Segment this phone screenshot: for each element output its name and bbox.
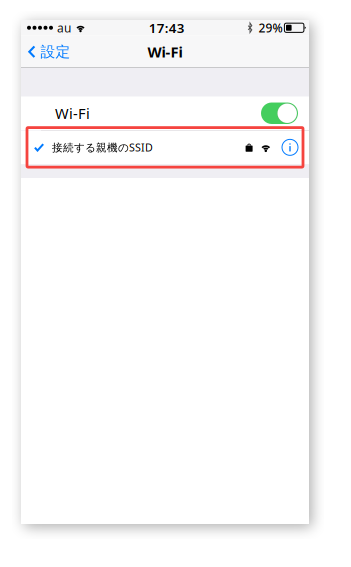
button[interactable]: Wi-Fi (21, 96, 309, 130)
button[interactable]: 設定 (21, 35, 79, 68)
staticText: 接続する親機のSSID (52, 140, 153, 154)
staticText: 29% (258, 20, 282, 36)
staticText: au (57, 20, 71, 36)
staticText: Wi-Fi (55, 103, 90, 123)
staticText: Wi-Fi (147, 42, 182, 61)
staticText: 設定 (41, 43, 71, 61)
button[interactable]: 接続する親機のSSID (21, 131, 309, 164)
staticText: 17:43 (149, 19, 185, 37)
